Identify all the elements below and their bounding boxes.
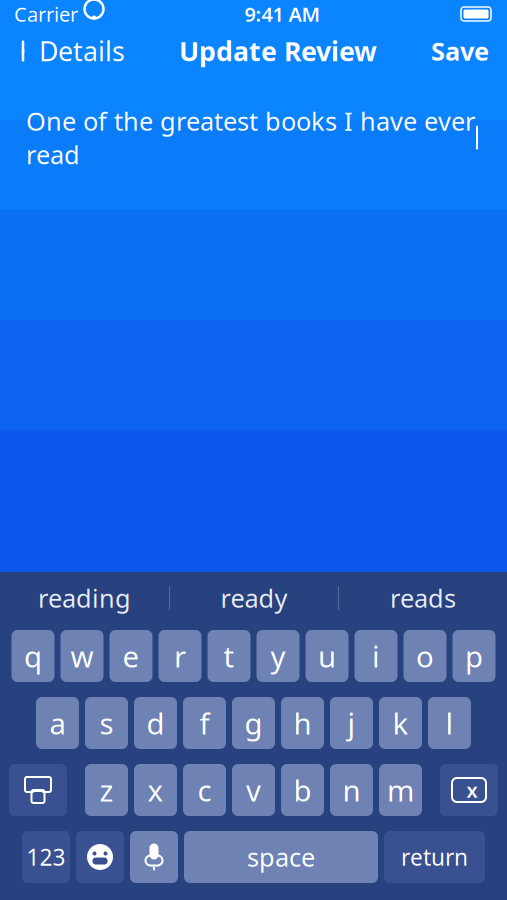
staticText: i <box>372 636 380 675</box>
staticText: z <box>99 770 113 809</box>
button[interactable]: v <box>232 764 275 816</box>
button[interactable]: o <box>403 630 446 682</box>
staticText: x <box>147 770 163 809</box>
button[interactable]: g <box>232 697 275 749</box>
staticText: s <box>99 703 113 742</box>
staticText: o <box>416 636 434 675</box>
staticText: u <box>318 636 336 675</box>
button[interactable]: x <box>134 764 177 816</box>
staticText: Save <box>431 34 489 68</box>
button[interactable]: i <box>354 630 397 682</box>
staticText: reads <box>390 581 456 615</box>
button[interactable]: space <box>184 831 378 883</box>
button[interactable]: l <box>428 697 471 749</box>
button[interactable]: return <box>384 831 485 883</box>
button[interactable]: d <box>134 697 177 749</box>
staticText: q <box>24 636 42 675</box>
button[interactable]: Save <box>431 26 507 76</box>
staticText: ready <box>220 581 287 615</box>
staticText: c <box>197 770 211 809</box>
staticText: w <box>70 636 93 675</box>
button[interactable]: y <box>256 630 299 682</box>
button[interactable]: Shift <box>9 764 67 816</box>
button[interactable]: 123 <box>22 831 70 883</box>
staticText: m <box>387 770 414 809</box>
staticText: l <box>445 703 453 742</box>
staticText: y <box>270 636 285 675</box>
button[interactable]: Emoji <box>76 831 124 883</box>
staticText: x <box>466 777 477 803</box>
staticText: Details <box>39 33 125 69</box>
button[interactable]: reading <box>0 576 169 620</box>
staticText: e <box>122 636 139 675</box>
button[interactable]: w <box>60 630 103 682</box>
staticText: 9:41 AM <box>244 1 320 27</box>
button[interactable]: j <box>330 697 373 749</box>
staticText: t <box>223 636 234 675</box>
button[interactable]: a <box>36 697 79 749</box>
button[interactable]: p <box>452 630 495 682</box>
button[interactable]: reads <box>339 576 507 620</box>
button[interactable]: q <box>11 630 54 682</box>
staticText: return <box>401 842 468 872</box>
button[interactable]: Details <box>0 25 125 77</box>
staticText: j <box>347 703 355 742</box>
staticText: p <box>465 636 483 675</box>
button[interactable]: k <box>379 697 422 749</box>
button[interactable]: s <box>85 697 128 749</box>
staticText: n <box>342 770 360 809</box>
button[interactable]: b <box>281 764 324 816</box>
button[interactable]: m <box>379 764 422 816</box>
button[interactable]: n <box>330 764 373 816</box>
staticText: f <box>199 703 209 742</box>
staticText: One of the greatest books I have ever re… <box>26 104 475 171</box>
button[interactable]: t <box>207 630 250 682</box>
button[interactable]: e <box>109 630 152 682</box>
button[interactable]: z <box>85 764 128 816</box>
button[interactable]: Delete <box>440 764 498 816</box>
button[interactable]: r <box>158 630 201 682</box>
button[interactable]: c <box>183 764 226 816</box>
staticText: r <box>174 636 186 675</box>
staticText: a <box>49 703 65 742</box>
button[interactable]: ready <box>170 576 338 620</box>
staticText: reading <box>38 581 131 615</box>
staticText: b <box>293 770 311 809</box>
staticText: g <box>244 703 262 742</box>
staticText: v <box>246 770 261 809</box>
staticText: Carrier <box>14 1 78 27</box>
staticText: h <box>293 703 311 742</box>
button[interactable]: f <box>183 697 226 749</box>
staticText: Update Review <box>179 33 377 69</box>
button[interactable]: u <box>305 630 348 682</box>
button[interactable]: h <box>281 697 324 749</box>
staticText: space <box>247 840 315 874</box>
staticText: k <box>392 703 408 742</box>
staticText: 123 <box>26 842 65 872</box>
staticText: d <box>146 703 164 742</box>
button[interactable]: Dictation <box>130 831 178 883</box>
